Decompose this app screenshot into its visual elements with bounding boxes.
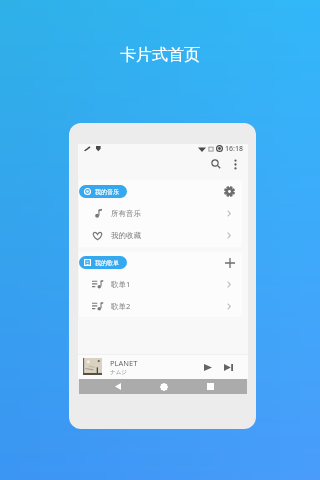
button[interactable]: Recent apps bbox=[196, 379, 225, 394]
button[interactable]: Search bbox=[208, 156, 224, 172]
staticText: 歌单2 bbox=[111, 301, 131, 311]
staticText: PLANET bbox=[110, 358, 138, 368]
button[interactable]: 歌单2 bbox=[79, 295, 242, 317]
button[interactable]: Play bbox=[201, 360, 215, 374]
staticText: 我的歌单 bbox=[95, 259, 119, 267]
staticText: 卡片式首页 bbox=[120, 45, 200, 65]
staticText: 我的收藏 bbox=[111, 231, 141, 240]
staticText: 所有音乐 bbox=[111, 209, 141, 218]
staticText: ナムジ bbox=[110, 369, 127, 376]
button[interactable]: 我的收藏 bbox=[79, 224, 242, 246]
button[interactable]: Add playlist bbox=[221, 254, 238, 271]
button[interactable]: Home bbox=[149, 379, 178, 394]
staticText: 我的音乐 bbox=[95, 188, 119, 196]
button[interactable]: 我的音乐 bbox=[79, 185, 127, 198]
button[interactable]: Back bbox=[103, 379, 132, 394]
staticText: 歌单1 bbox=[111, 279, 131, 289]
button[interactable]: More options bbox=[227, 156, 243, 172]
button[interactable]: 歌单1 bbox=[79, 273, 242, 295]
button[interactable]: Next track bbox=[221, 360, 235, 374]
button[interactable]: 我的歌单 bbox=[79, 256, 127, 269]
button[interactable]: Settings bbox=[221, 183, 238, 200]
staticText: 16:18 bbox=[225, 144, 243, 153]
button[interactable]: 所有音乐 bbox=[79, 202, 242, 224]
